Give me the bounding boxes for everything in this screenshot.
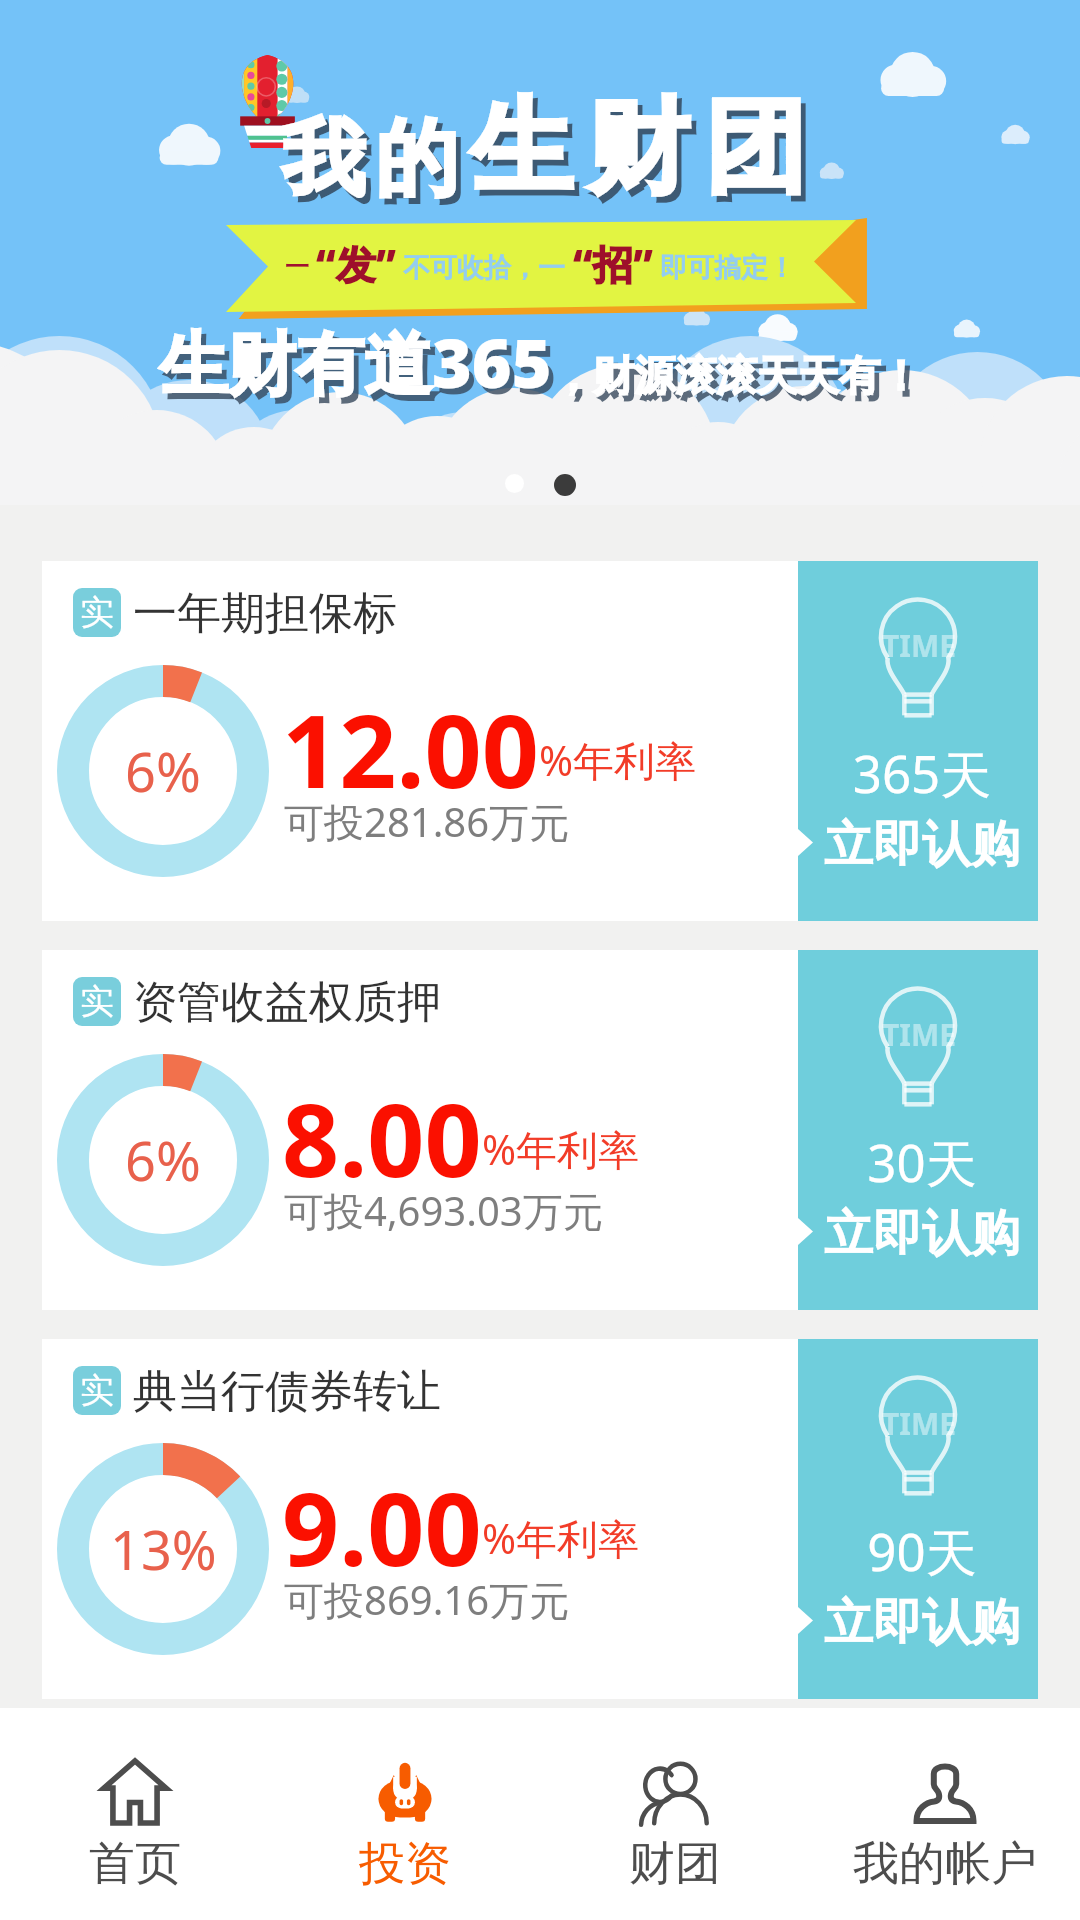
staticText: 即可搞定！ [653,248,796,285]
staticText: 生财团 [463,84,814,212]
staticText: 我的帐户 [853,1835,1037,1893]
staticText: 9.00 [282,1459,482,1595]
staticText: 首页 [89,1835,181,1893]
staticText: 立即认购 [802,1592,1042,1654]
button[interactable]: 财团 [540,1708,810,1920]
staticText: ，财源滚滚天天有！ [557,357,926,409]
staticText: 实 [80,591,114,634]
staticText: 一年期担保标 [133,586,397,641]
staticText: TIME [882,625,957,666]
staticText: 不可收拾，一 [396,248,573,285]
button[interactable]: 我的帐户 [810,1708,1080,1920]
staticText: 可投4,693.03万元 [284,1183,603,1238]
staticText: %年利率 [482,1121,640,1177]
button[interactable]: 首页 [0,1708,270,1920]
staticText: 实 [80,1369,114,1412]
staticText: 我的 [277,107,463,212]
staticText: 实 [80,980,114,1023]
staticText: TIME [882,1403,957,1444]
button[interactable]: 投资 [270,1708,540,1920]
staticText: “发” [316,236,396,291]
staticText: TIME [882,1014,957,1055]
staticText: 12.00 [282,681,539,817]
staticText: “招” [573,236,653,291]
staticText: 投资 [359,1835,451,1893]
staticText: 立即认购 [802,1203,1042,1265]
staticText: ，财源滚滚天天有！ [552,351,921,403]
staticText: 典当行债券转让 [133,1364,441,1419]
staticText: 生财有道365 [160,315,552,408]
button[interactable]: 实 [42,561,1038,921]
staticText: 8.00 [282,1070,482,1206]
staticText: 90天 [802,1516,1042,1586]
staticText: 立即认购 [802,814,1042,876]
other: 投资 [373,1761,437,1823]
staticText: 可投281.86万元 [284,794,570,849]
staticText: 365天 [802,738,1042,808]
staticText: 生财团 [468,90,819,218]
staticText: 6% [125,734,201,808]
button[interactable]: 实 [42,950,1038,1310]
button[interactable]: TIME [798,950,1038,1310]
button[interactable]: 实 [42,1339,1038,1699]
staticText: %年利率 [482,1510,640,1566]
staticText: 生财有道365 [165,321,557,414]
staticText: 财团 [629,1835,721,1893]
staticText: 6% [125,1123,201,1197]
staticText: 我的 [282,113,468,218]
button[interactable]: TIME [798,561,1038,921]
staticText: 资管收益权质押 [133,975,441,1030]
staticText: 13% [110,1512,217,1586]
staticText: %年利率 [539,732,697,788]
staticText: 可投869.16万元 [284,1572,570,1627]
staticText: 30天 [802,1127,1042,1197]
staticText: 一 [285,249,316,282]
button[interactable]: TIME [798,1339,1038,1699]
